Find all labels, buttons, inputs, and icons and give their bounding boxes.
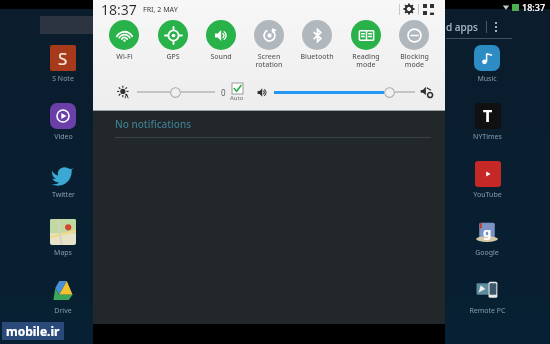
button[interactable]: Volume <box>254 84 270 100</box>
staticText: 18:37 <box>522 1 546 13</box>
button[interactable]: Screen rotation <box>246 20 292 69</box>
staticText: Music <box>477 74 497 84</box>
staticText: Auto <box>230 94 244 102</box>
staticText: T <box>483 105 493 127</box>
button[interactable]: Music <box>473 44 501 102</box>
staticText: Screen rotation <box>255 52 283 69</box>
staticText: GPS <box>166 52 180 62</box>
staticText: Blocking mode <box>400 52 429 69</box>
button[interactable]: Volume slider <box>274 84 415 100</box>
button[interactable]: Bluetooth <box>294 20 340 62</box>
staticText: mobile.ir <box>6 323 60 339</box>
button[interactable]: Maps <box>49 218 77 276</box>
button[interactable]: Sound <box>198 20 244 62</box>
button[interactable]: Reading mode <box>343 20 389 69</box>
staticText: Wi-Fi <box>116 52 133 62</box>
button[interactable]: Wi-Fi <box>101 20 147 62</box>
button[interactable]: g <box>473 218 501 276</box>
staticText: Reading mode <box>352 52 380 69</box>
button[interactable]: GPS <box>150 20 196 62</box>
staticText: Video <box>54 132 73 142</box>
staticText: g <box>483 223 492 241</box>
button[interactable]: Blocking mode <box>391 20 437 69</box>
staticText: 0 <box>221 87 226 98</box>
staticText: Remote PC <box>469 306 506 316</box>
staticText: Sound <box>210 52 232 62</box>
button[interactable]: Sound settings <box>419 84 435 100</box>
button[interactable]: YouTube <box>473 160 502 218</box>
button[interactable]: Video <box>49 102 77 160</box>
staticText: NYTimes <box>473 132 502 142</box>
staticText: YouTube <box>473 190 502 200</box>
staticText: Bluetooth <box>300 52 334 62</box>
staticText: 18:37 <box>101 0 137 18</box>
button[interactable]: Drive <box>49 276 77 334</box>
button[interactable]: Twitter <box>49 160 77 218</box>
staticText: d apps <box>446 20 478 34</box>
staticText: Twitter <box>52 190 75 200</box>
button[interactable]: Auto brightness <box>115 84 131 100</box>
button[interactable]: S <box>49 44 77 102</box>
button[interactable]: Brightness slider <box>137 84 215 100</box>
button[interactable]: Remote PC <box>469 276 506 334</box>
staticText: Maps <box>54 248 72 258</box>
button[interactable]: Edit quick settings <box>419 0 437 18</box>
staticText: Drive <box>54 306 72 316</box>
staticText: S <box>58 47 68 70</box>
staticText: Google <box>475 248 499 258</box>
staticText: S Note <box>52 74 74 84</box>
button[interactable]: Settings <box>400 0 418 18</box>
staticText: FRI, 2 MAY <box>143 5 178 15</box>
staticText: No notifications <box>115 117 192 131</box>
button[interactable]: Auto <box>230 83 244 102</box>
button[interactable]: T <box>473 102 502 160</box>
